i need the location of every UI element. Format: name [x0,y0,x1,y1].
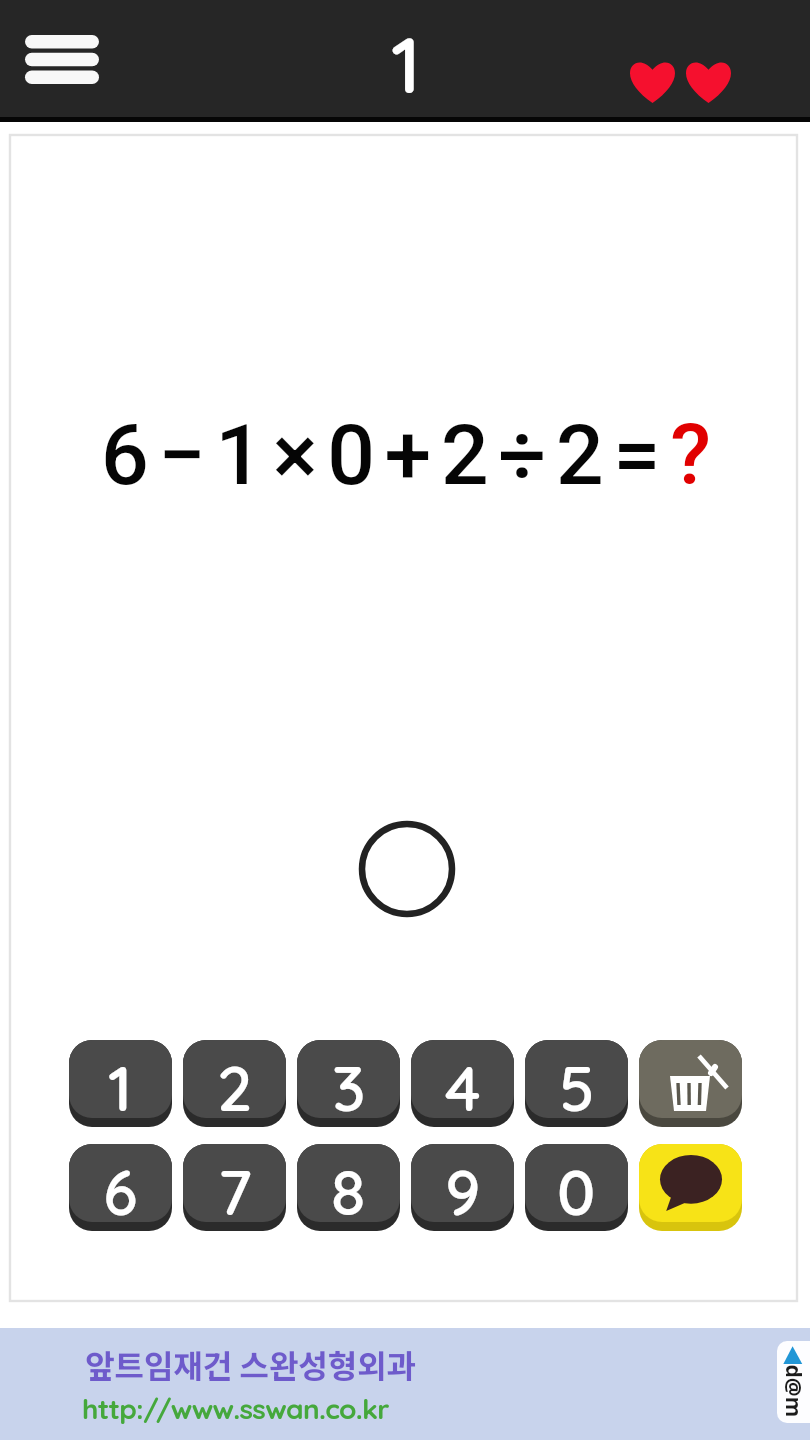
staticText: 6 [103,1152,138,1222]
staticText: 6 − 1 × 0 + 2 ÷ 2 = ? [101,406,706,504]
staticText: 4 [445,1048,481,1118]
button[interactable]: 6 [69,1144,172,1231]
button[interactable]: 3 [297,1040,400,1127]
staticText: 1 [108,1048,133,1118]
staticText: 8 [331,1152,366,1222]
button[interactable]: 5 [525,1040,628,1127]
staticText: http://www.sswan.co.kr [82,1391,389,1426]
staticText: 2 [217,1048,253,1118]
staticText: 3 [332,1048,366,1118]
button[interactable]: 8 [297,1144,400,1231]
staticText: 0 [557,1152,596,1222]
staticText: 1 [391,15,421,113]
button[interactable]: 앞트임재건 스완성형외과 [0,1328,810,1440]
button[interactable]: 0 [525,1144,628,1231]
staticText: d@m [778,1364,807,1417]
staticText: 7 [218,1152,252,1222]
button[interactable]: 9 [411,1144,514,1231]
staticText: 앞트임재건 스완성형외과 [85,1341,417,1387]
staticText: 9 [445,1152,481,1222]
button[interactable]: 2 [183,1040,286,1127]
button[interactable]: Menu [13,11,111,107]
button[interactable]: Chat [639,1144,742,1231]
button[interactable]: 4 [411,1040,514,1127]
button[interactable]: 7 [183,1144,286,1231]
button[interactable]: 1 [69,1040,172,1127]
button[interactable]: Clear [639,1040,742,1127]
staticText: 5 [559,1048,595,1118]
